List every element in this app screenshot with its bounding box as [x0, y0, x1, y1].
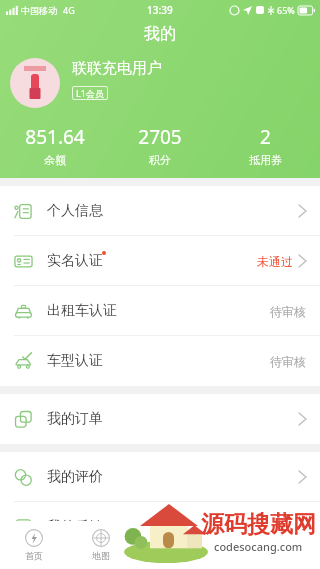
staticText: 中国移动 [21, 5, 57, 16]
button[interactable]: 实名认证 [0, 236, 320, 286]
staticText: 我的反馈 [47, 518, 103, 536]
button[interactable]: 首页 [0, 521, 67, 569]
staticText: 车型认证 [47, 352, 103, 370]
button[interactable]: 我的订单 [0, 394, 320, 444]
staticText: 2 [260, 124, 271, 150]
staticText: codesocang.com [214, 539, 303, 554]
staticText: 出租车认证 [47, 302, 117, 320]
button[interactable]: Avatar [10, 58, 60, 108]
staticText: 我的订单 [47, 410, 103, 428]
staticText: 4G [63, 4, 75, 16]
staticText: 余额 [44, 153, 66, 167]
button[interactable]: 851.64 [5, 124, 105, 167]
staticText: 实名认证 [47, 252, 103, 270]
button[interactable]: 个人信息 [0, 186, 320, 236]
button[interactable]: 地图 [67, 521, 134, 569]
button[interactable]: 我的评价 [0, 452, 320, 502]
staticText: 2705 [138, 124, 182, 150]
staticText: 地图 [92, 550, 110, 561]
staticText: 首页 [25, 550, 43, 561]
staticText: 851.64 [25, 124, 85, 150]
button[interactable]: L1会员 [76, 87, 104, 99]
staticText: L1会员 [76, 87, 104, 99]
button[interactable]: 2 [215, 124, 315, 167]
staticText: 待审核 [270, 304, 306, 319]
staticText: 待审核 [270, 354, 306, 369]
staticText: 65% [277, 4, 295, 16]
button[interactable]: 我的反馈 [0, 502, 320, 552]
staticText: 源码搜藏网 [201, 510, 316, 539]
staticText: 未通过 [257, 254, 293, 269]
staticText: 个人信息 [47, 202, 103, 220]
staticText: 我的评价 [47, 468, 103, 486]
staticText: 我的 [144, 24, 176, 44]
button[interactable]: 2705 [110, 124, 210, 167]
staticText: 积分 [149, 153, 171, 167]
staticText: 抵用券 [249, 153, 282, 167]
staticText: 13:39 [147, 3, 173, 17]
staticText: 联联充电用户 [72, 59, 162, 78]
button[interactable]: 车型认证 [0, 336, 320, 386]
button[interactable]: 出租车认证 [0, 286, 320, 336]
